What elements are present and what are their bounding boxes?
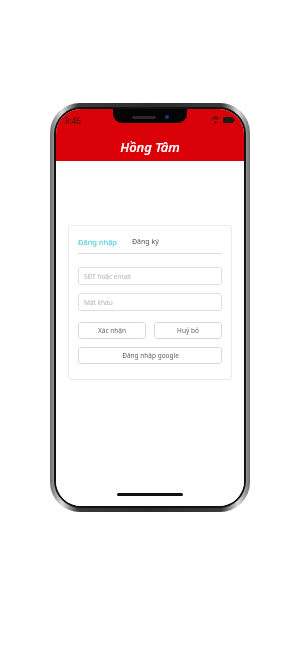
button[interactable]: Mật khẩu <box>78 293 222 311</box>
staticText: Đăng nhập google <box>122 351 179 360</box>
staticText: Đăng nhập <box>78 237 117 247</box>
staticText: 8:46 <box>65 115 81 126</box>
button[interactable]: Huỷ bỏ <box>154 322 222 339</box>
button[interactable]: Đăng ký <box>130 237 161 247</box>
button[interactable]: Đăng nhập google <box>78 347 222 364</box>
button[interactable]: Đăng nhập <box>78 237 119 247</box>
staticText: Mật khẩu <box>84 298 113 307</box>
button[interactable]: Xác nhận <box>78 322 146 339</box>
other: Wi-Fi signal <box>211 117 220 124</box>
staticText: Xác nhận <box>98 326 126 335</box>
button[interactable]: SĐT hoặc email <box>78 267 222 285</box>
staticText: Đăng ký <box>132 237 159 247</box>
staticText: Huỷ bỏ <box>177 326 199 335</box>
staticText: Hồng Tâm <box>56 138 244 156</box>
other: Battery <box>223 117 235 123</box>
staticText: SĐT hoặc email <box>84 272 131 281</box>
